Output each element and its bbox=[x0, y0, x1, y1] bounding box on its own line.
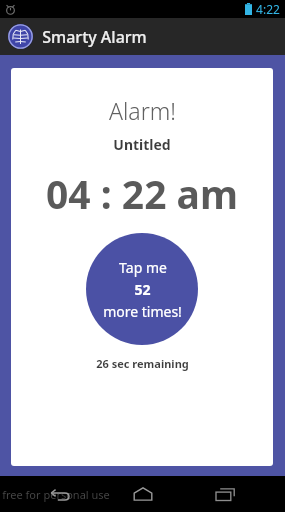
staticText: Untitled bbox=[113, 135, 171, 154]
staticText: 4:22 bbox=[256, 1, 280, 17]
staticText: 04 : 22 am bbox=[46, 167, 238, 220]
button[interactable]: Home bbox=[120, 476, 166, 512]
staticText: 26 sec remaining bbox=[96, 356, 189, 371]
button[interactable]: Tap me bbox=[86, 233, 198, 345]
staticText: more times! bbox=[103, 302, 182, 321]
staticText: free for personal use bbox=[2, 487, 110, 502]
staticText: Alarm! bbox=[109, 95, 176, 126]
button[interactable]: Back bbox=[37, 476, 83, 512]
staticText: Tap me bbox=[119, 258, 167, 277]
staticText: Smarty Alarm bbox=[42, 26, 147, 48]
staticText: 52 bbox=[134, 280, 151, 299]
button[interactable]: Recent apps bbox=[202, 476, 248, 512]
